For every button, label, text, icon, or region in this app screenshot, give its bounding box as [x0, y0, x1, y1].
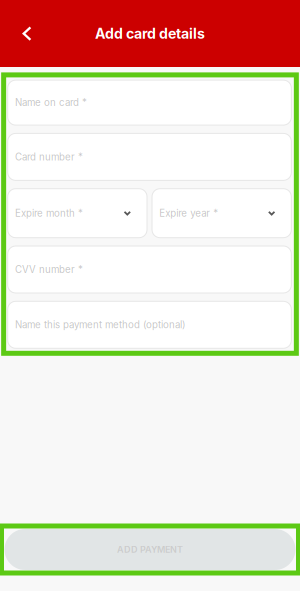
- button[interactable]: Name this payment method (optional): [8, 301, 291, 348]
- button[interactable]: ADD PAYMENT: [4, 529, 295, 570]
- button[interactable]: Expire month *: [8, 189, 147, 238]
- staticText: Card number *: [15, 151, 83, 163]
- button[interactable]: Expire year *: [152, 189, 291, 238]
- button[interactable]: Card number *: [8, 133, 291, 180]
- staticText: Expire month *: [15, 207, 83, 219]
- staticText: Add card details: [95, 25, 205, 42]
- button[interactable]: CVV number *: [8, 246, 291, 293]
- staticText: ADD PAYMENT: [117, 544, 183, 555]
- staticText: Name this payment method (optional): [15, 319, 186, 331]
- staticText: Name on card *: [15, 97, 87, 108]
- button[interactable]: Name on card *: [8, 80, 291, 125]
- staticText: Expire year *: [159, 207, 218, 219]
- button[interactable]: Back: [0, 8, 54, 58]
- staticText: CVV number *: [15, 264, 83, 275]
